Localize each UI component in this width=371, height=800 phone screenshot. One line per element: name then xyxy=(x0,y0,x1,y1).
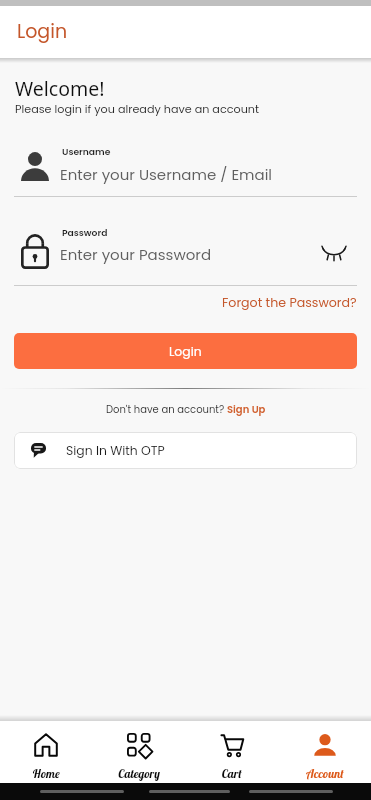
staticText: Please login if you already have an acco… xyxy=(15,101,260,117)
staticText: Category xyxy=(118,766,160,781)
staticText: Cart xyxy=(221,766,242,781)
button[interactable]: Category xyxy=(92,721,185,781)
staticText: Welcome! xyxy=(15,75,105,102)
staticText: Enter your Username / Email xyxy=(60,164,273,185)
button[interactable]: Home xyxy=(0,721,92,781)
staticText: Home xyxy=(32,766,60,781)
button[interactable]: Account xyxy=(278,721,371,781)
staticText: Account xyxy=(306,766,344,781)
button[interactable]: Sign In With OTP xyxy=(14,432,357,469)
staticText: Password xyxy=(62,226,108,239)
button[interactable]: Show password xyxy=(320,239,348,267)
button[interactable]: Forgot the Password? xyxy=(214,292,366,314)
staticText: Login xyxy=(169,343,202,360)
staticText: Username xyxy=(62,145,111,158)
staticText: Sign In With OTP xyxy=(66,442,165,459)
button[interactable]: Sign Up xyxy=(227,402,266,416)
staticText: Enter your Password xyxy=(60,244,212,265)
button[interactable]: Cart xyxy=(185,721,278,781)
staticText: Login xyxy=(17,18,68,45)
button[interactable]: Login xyxy=(14,333,357,369)
staticText: Don't have an account? xyxy=(106,402,227,416)
staticText: Forgot the Password? xyxy=(222,294,357,312)
